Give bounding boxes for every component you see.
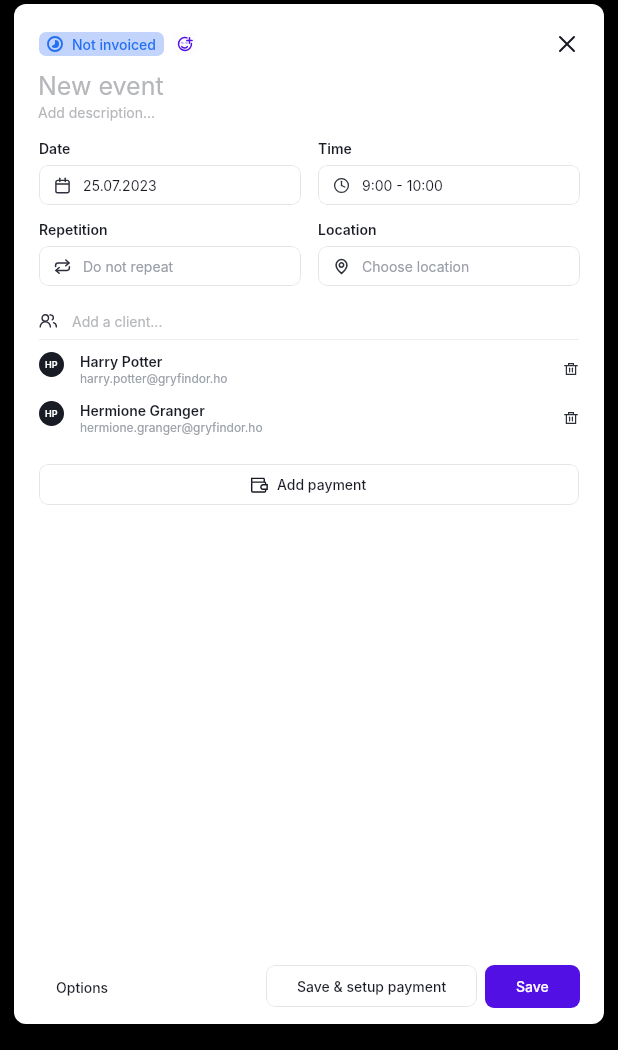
staticText: Date: [39, 140, 71, 157]
button[interactable]: Do not repeat: [39, 246, 301, 286]
button[interactable]: Options: [42, 971, 123, 1004]
button[interactable]: Add reaction: [172, 31, 197, 56]
staticText: Save & setup payment: [297, 978, 447, 995]
button[interactable]: Close: [553, 30, 581, 58]
staticText: Location: [318, 221, 377, 238]
staticText: Add payment: [277, 476, 367, 493]
button[interactable]: Delete: [551, 355, 579, 383]
staticText: Save: [516, 978, 549, 995]
staticText: HP: [45, 359, 58, 370]
button[interactable]: Add description...: [38, 104, 156, 121]
button[interactable]: HP: [39, 396, 579, 431]
staticText: New event: [38, 71, 164, 101]
staticText: 9:00 - 10:00: [362, 177, 443, 194]
staticText: HP: [45, 408, 58, 419]
staticText: Choose location: [362, 258, 470, 275]
staticText: harry.potter@gryfindor.ho: [80, 371, 228, 386]
button[interactable]: 25.07.2023: [39, 165, 301, 205]
button[interactable]: Add payment: [39, 464, 579, 505]
button[interactable]: Add a client...: [39, 305, 579, 337]
staticText: Add a client...: [72, 313, 163, 330]
staticText: Not invoiced: [72, 36, 156, 53]
staticText: Time: [318, 140, 352, 157]
staticText: Harry Potter: [80, 353, 163, 370]
button[interactable]: 9:00 - 10:00: [318, 165, 580, 205]
button[interactable]: Delete: [551, 404, 579, 432]
button[interactable]: Save: [485, 965, 580, 1008]
staticText: Hermione Granger: [80, 402, 205, 419]
staticText: 25.07.2023: [83, 177, 157, 194]
staticText: Do not repeat: [83, 258, 174, 275]
staticText: Options: [56, 979, 109, 996]
button[interactable]: HP: [39, 347, 579, 382]
button[interactable]: Save & setup payment: [266, 965, 477, 1007]
staticText: hermione.granger@gryfindor.ho: [80, 420, 263, 435]
staticText: Repetition: [39, 221, 108, 238]
button[interactable]: Choose location: [318, 246, 580, 286]
button[interactable]: Not invoiced: [39, 32, 164, 56]
button[interactable]: New event: [38, 71, 164, 101]
staticText: Add description...: [38, 104, 156, 121]
